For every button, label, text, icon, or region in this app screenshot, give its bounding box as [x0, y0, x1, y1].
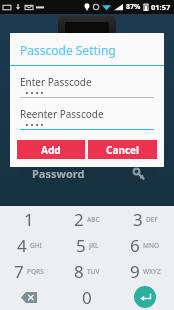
- staticText: DEF: [146, 215, 158, 224]
- staticText: 4: [17, 234, 27, 257]
- staticText: WXYZ: [143, 267, 161, 276]
- staticText: Enter Passcode: [20, 75, 92, 89]
- button[interactable]: 8: [58, 258, 116, 284]
- button[interactable]: Password: [20, 162, 156, 184]
- button[interactable]: 4: [0, 232, 58, 258]
- button[interactable]: 9: [116, 258, 174, 284]
- staticText: PQRS: [27, 267, 44, 276]
- button[interactable]: 2: [58, 206, 116, 232]
- staticText: 0: [82, 286, 92, 309]
- staticText: JKL: [89, 241, 99, 250]
- staticText: 9: [130, 260, 140, 283]
- button[interactable]: Add: [17, 140, 85, 159]
- staticText: 8: [74, 260, 84, 283]
- staticText: 01:57: [151, 2, 171, 12]
- staticText: Passcode Setting: [20, 42, 116, 58]
- button[interactable]: 0: [58, 284, 116, 310]
- staticText: Reenter Passcode: [20, 107, 104, 121]
- staticText: 87%: [126, 2, 141, 12]
- button[interactable]: Enter: [116, 284, 174, 310]
- staticText: Add: [41, 143, 61, 157]
- staticText: Cancel: [106, 143, 140, 157]
- staticText: MNO: [143, 241, 160, 250]
- staticText: 6: [130, 234, 140, 257]
- button[interactable]: 6: [116, 232, 174, 258]
- staticText: GHI: [30, 241, 42, 250]
- button[interactable]: 7: [0, 258, 58, 284]
- button[interactable]: 5: [58, 232, 116, 258]
- staticText: 7: [14, 260, 24, 283]
- staticText: 1: [24, 208, 34, 231]
- button[interactable]: Cancel: [88, 140, 157, 159]
- staticText: Password: [32, 166, 85, 181]
- button[interactable]: 3: [116, 206, 174, 232]
- staticText: 2: [74, 208, 84, 231]
- staticText: 5: [76, 234, 86, 257]
- button[interactable]: Backspace: [0, 284, 58, 310]
- staticText: 3: [133, 208, 143, 231]
- staticText: TUV: [87, 267, 100, 276]
- button[interactable]: 1: [0, 206, 58, 232]
- staticText: ABC: [87, 215, 100, 224]
